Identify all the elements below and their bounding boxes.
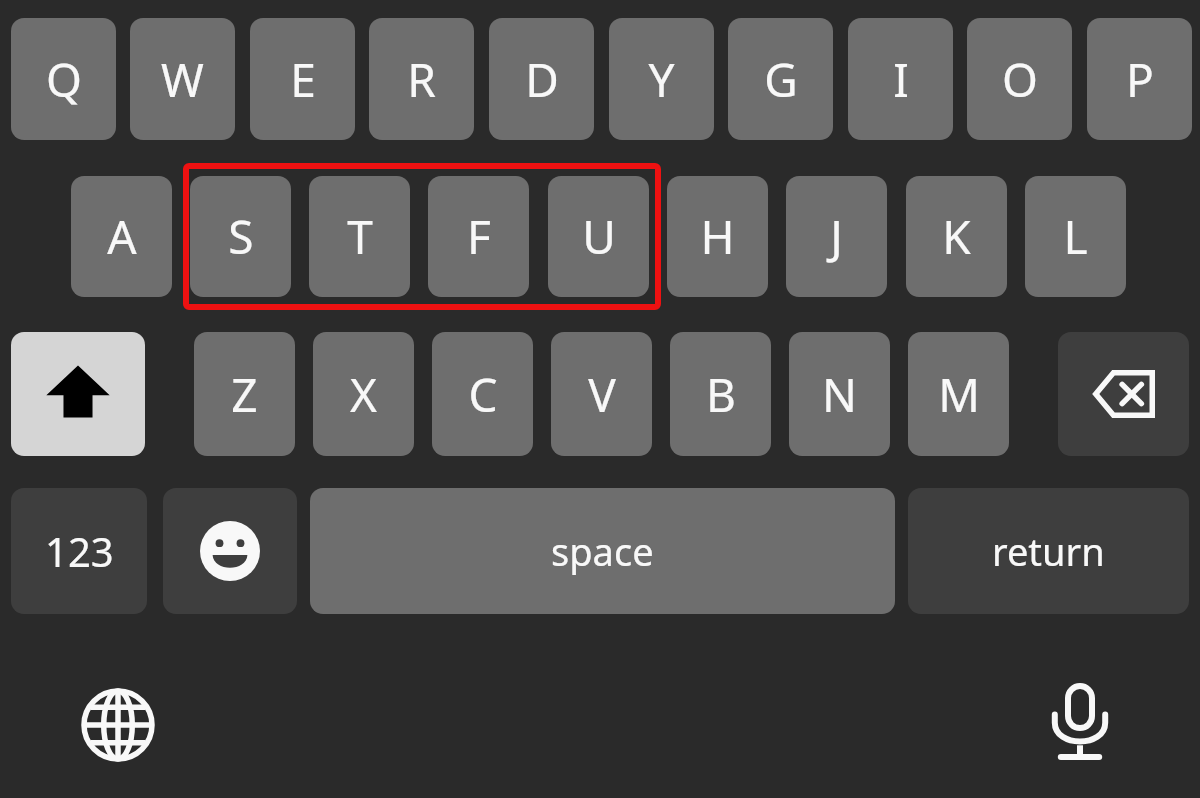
button[interactable]: 123 (11, 488, 147, 614)
staticText: U (582, 205, 616, 268)
button[interactable]: N (789, 332, 890, 456)
button[interactable]: C (432, 332, 533, 456)
button[interactable]: G (728, 18, 833, 140)
staticText: B (706, 363, 736, 426)
staticText: Z (231, 363, 258, 426)
button[interactable]: A (71, 176, 172, 297)
staticText: E (290, 48, 316, 111)
button[interactable]: E (250, 18, 355, 140)
staticText: W (161, 48, 204, 111)
button[interactable]: I (848, 18, 953, 140)
button[interactable]: J (786, 176, 887, 297)
button[interactable]: V (551, 332, 652, 456)
staticText: T (347, 205, 373, 268)
button[interactable]: T (309, 176, 410, 297)
button[interactable]: X (313, 332, 414, 456)
button[interactable]: P (1087, 18, 1192, 140)
button[interactable]: Q (11, 18, 116, 140)
staticText: F (467, 205, 491, 268)
button[interactable]: Emoji (163, 488, 297, 614)
staticText: 123 (45, 524, 114, 578)
button[interactable]: L (1025, 176, 1126, 297)
staticText: L (1063, 205, 1088, 268)
staticText: R (407, 48, 436, 111)
button[interactable]: H (667, 176, 768, 297)
staticText: X (350, 363, 377, 426)
staticText: N (822, 363, 857, 426)
staticText: P (1126, 48, 1154, 111)
staticText: Q (46, 48, 82, 111)
staticText: G (764, 48, 798, 111)
button[interactable]: Change keyboard language (70, 677, 166, 773)
staticText: K (942, 205, 971, 268)
staticText: I (893, 48, 909, 111)
staticText: C (468, 363, 498, 426)
button[interactable]: Y (609, 18, 714, 140)
button[interactable]: R (369, 18, 474, 140)
staticText: space (551, 525, 654, 577)
staticText: Y (648, 48, 675, 111)
button[interactable]: O (967, 18, 1072, 140)
staticText: D (525, 48, 559, 111)
button[interactable]: Shift (11, 332, 145, 456)
button[interactable]: U (548, 176, 649, 297)
staticText: M (938, 363, 980, 426)
staticText: return (992, 525, 1105, 577)
button[interactable]: B (670, 332, 771, 456)
button[interactable]: W (130, 18, 235, 140)
button[interactable]: Voice input (1032, 674, 1128, 770)
staticText: V (588, 363, 616, 426)
button[interactable]: space (310, 488, 895, 614)
button[interactable]: F (428, 176, 529, 297)
button[interactable]: return (908, 488, 1189, 614)
staticText: S (228, 205, 254, 268)
button[interactable]: D (489, 18, 594, 140)
staticText: A (107, 205, 137, 268)
button[interactable]: Backspace (1058, 332, 1189, 456)
button[interactable]: S (190, 176, 291, 297)
button[interactable]: K (906, 176, 1007, 297)
button[interactable]: M (908, 332, 1009, 456)
staticText: J (830, 205, 843, 268)
staticText: H (700, 205, 735, 268)
button[interactable]: Z (194, 332, 295, 456)
staticText: O (1002, 48, 1038, 111)
